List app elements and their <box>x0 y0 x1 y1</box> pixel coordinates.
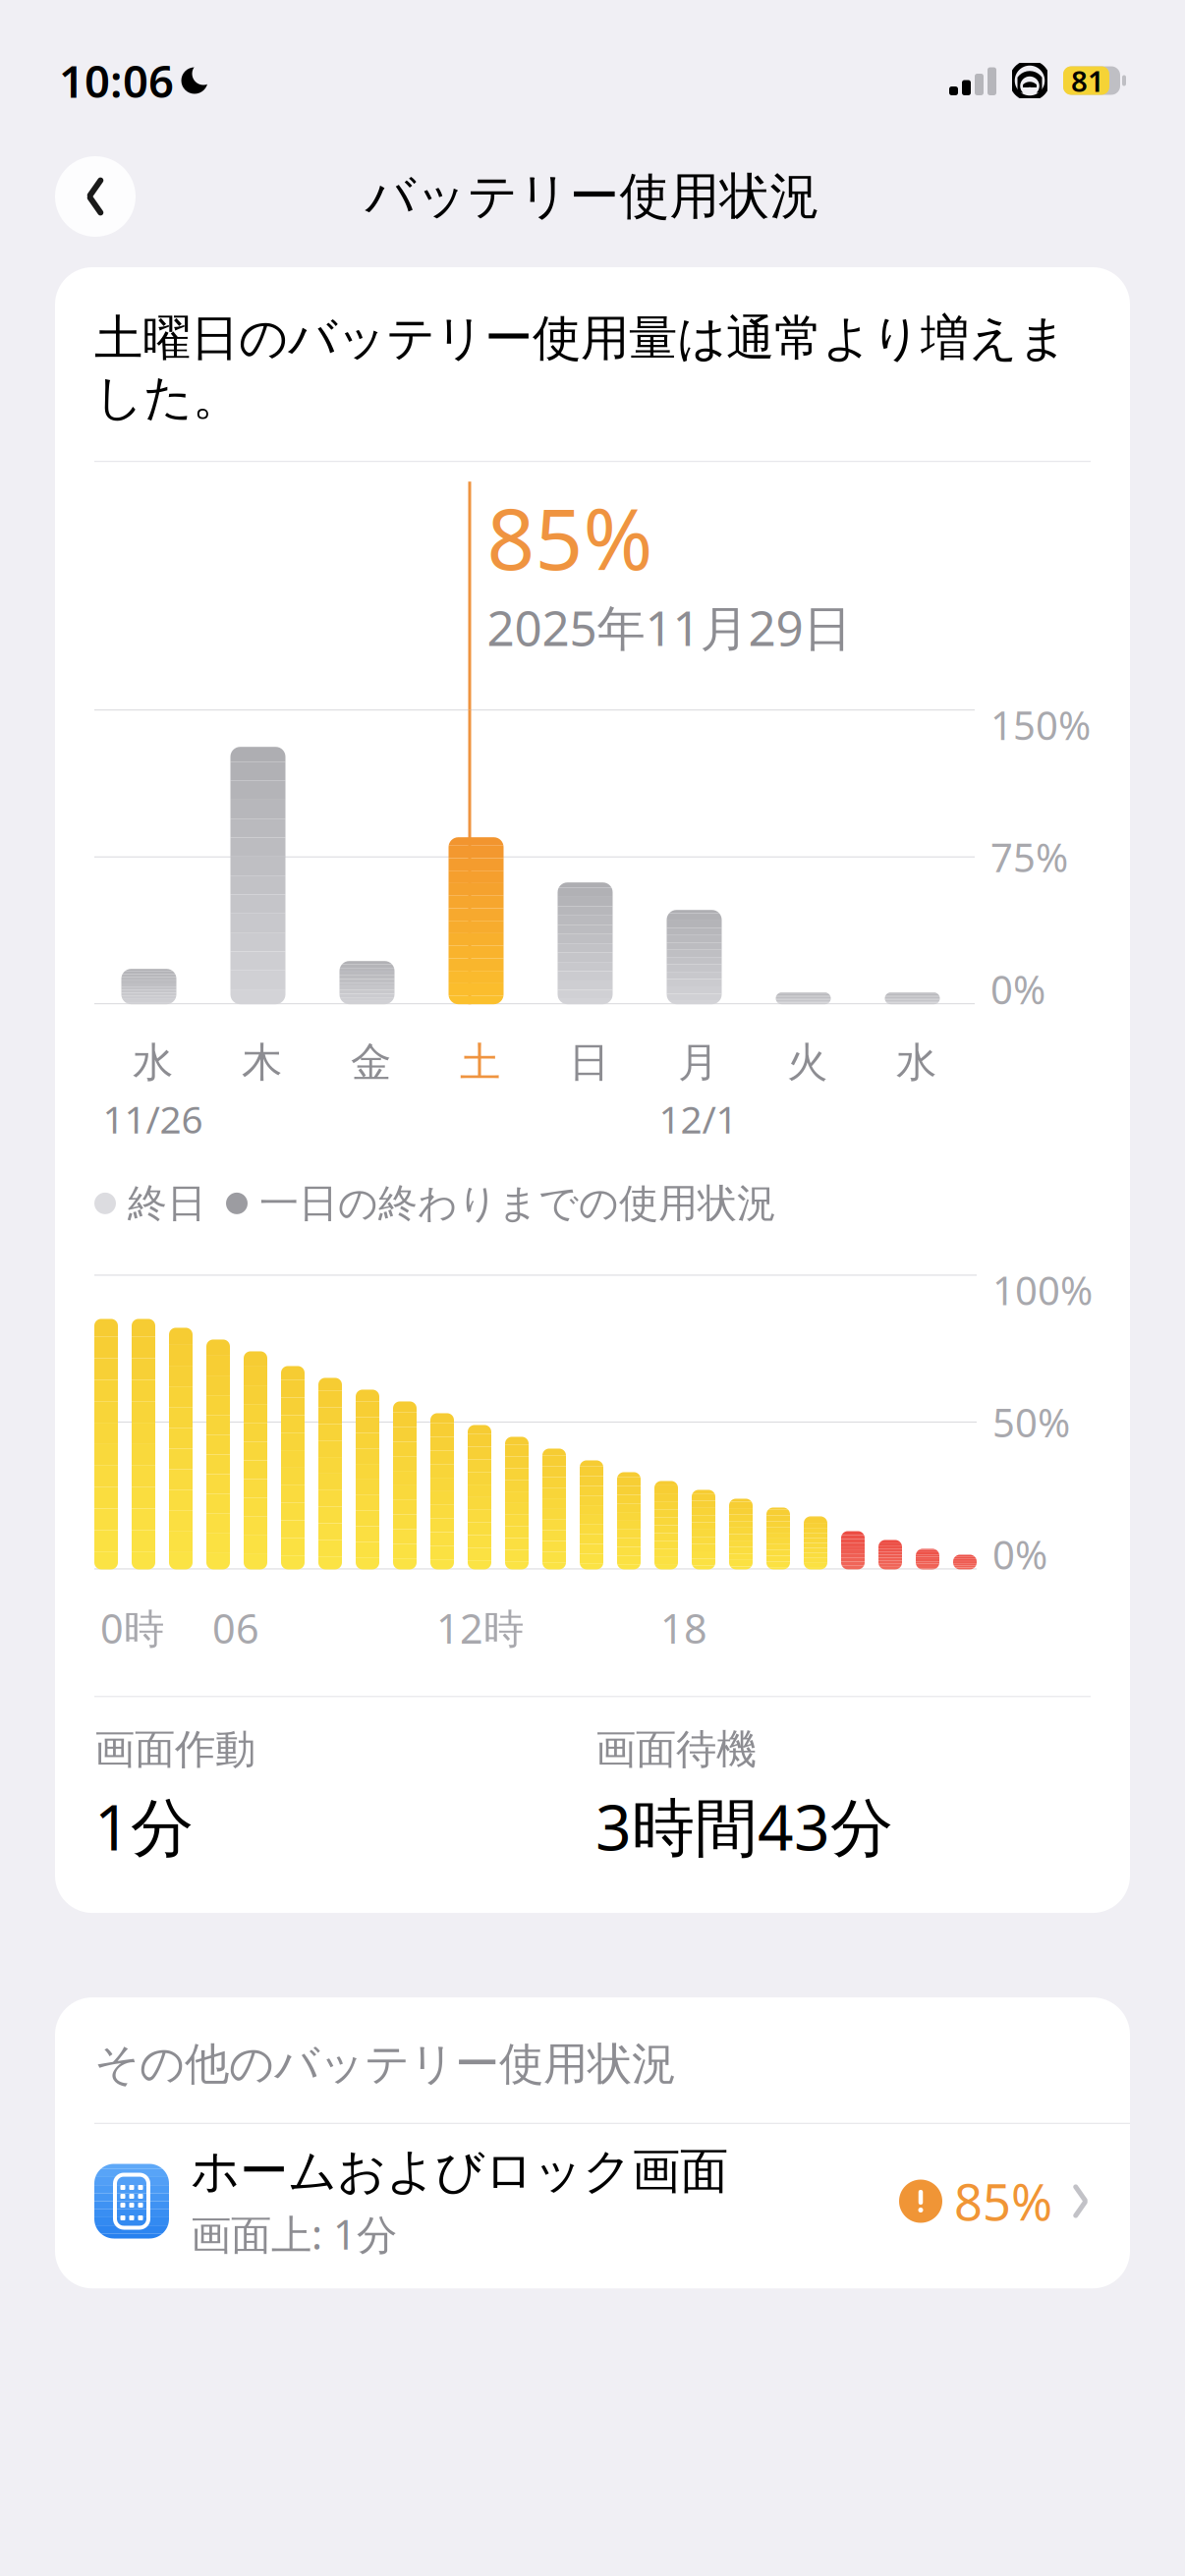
staticText: 2025年11月29日 <box>487 595 851 659</box>
staticText: 12時 <box>436 1601 524 1655</box>
staticText: バッテリー使用状況 <box>365 166 820 227</box>
staticText: 1分 <box>94 1784 194 1868</box>
staticText: 木 <box>242 1038 282 1088</box>
staticText: ホームおよびロック画面 <box>191 2142 728 2201</box>
staticText: 土 <box>460 1038 500 1088</box>
staticText: 金 <box>351 1038 391 1088</box>
staticText: 10:06 <box>59 51 174 110</box>
staticText: 100% <box>992 1264 1093 1316</box>
staticText: 0% <box>992 1528 1047 1580</box>
staticText: 日 <box>569 1038 609 1088</box>
staticText: 18 <box>660 1601 707 1655</box>
staticText: その他のバッテリー使用状況 <box>94 2037 676 2091</box>
staticText: 火 <box>787 1038 827 1088</box>
staticText: 水 <box>896 1038 936 1088</box>
staticText: 0時 <box>100 1601 164 1655</box>
staticText: 0% <box>990 963 1045 1015</box>
staticText: 一日の終わりまでの使用状況 <box>259 1179 776 1227</box>
staticText: 水 <box>133 1038 173 1088</box>
staticText: 3時間43分 <box>595 1784 893 1868</box>
button[interactable]: 戻る <box>55 156 136 237</box>
staticText: 150% <box>990 699 1091 751</box>
staticText: 75% <box>990 831 1068 883</box>
staticText: 06 <box>212 1601 259 1655</box>
staticText: 月 <box>678 1038 718 1088</box>
staticText: 終日 <box>128 1179 206 1227</box>
staticText: 85% <box>487 482 653 593</box>
staticText: 土曜日のバッテリー使用量は通常より増えました。 <box>94 308 1067 428</box>
staticText: 12/1 <box>659 1093 737 1144</box>
button[interactable]: ホームおよびロック画面 <box>55 2124 1130 2279</box>
staticText: 画面作動 <box>94 1725 255 1774</box>
staticText: 81 <box>1071 61 1104 100</box>
staticText: 11/26 <box>103 1093 203 1144</box>
staticText: 50% <box>992 1396 1070 1448</box>
staticText: 85% <box>954 2168 1052 2234</box>
staticText: 画面上: 1分 <box>191 2207 397 2261</box>
staticText: 画面待機 <box>595 1725 757 1774</box>
